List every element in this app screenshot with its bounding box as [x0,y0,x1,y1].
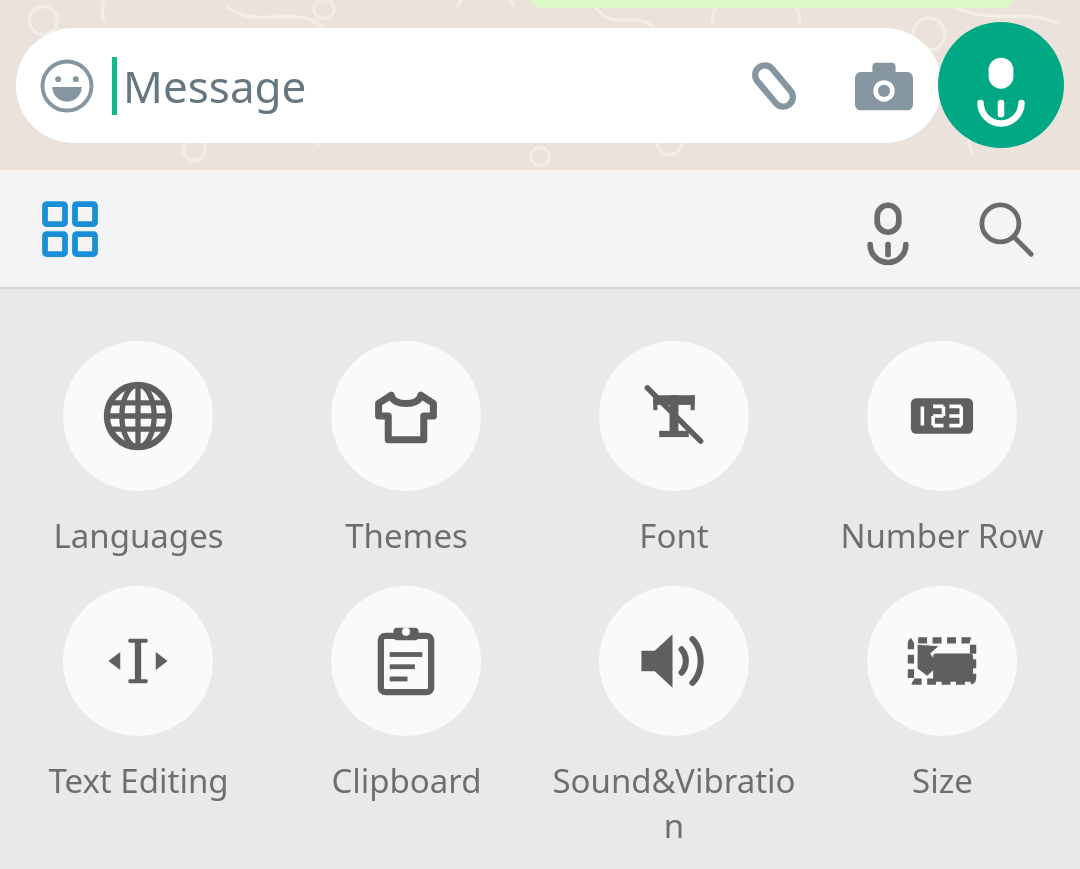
button[interactable]: Attach [738,50,810,122]
button[interactable]: Size [812,586,1072,803]
button[interactable]: Clipboard [276,586,536,803]
button[interactable]: Keyboard menu [26,185,114,273]
button[interactable]: Text Editing [8,586,268,803]
staticText: Size [912,758,973,803]
button[interactable]: Camera [848,50,920,122]
button[interactable]: Sound&Vibration [544,586,804,848]
button[interactable]: Emoji [16,28,942,143]
staticText: Text Editing [48,758,229,803]
staticText: Font [639,513,709,558]
staticText: Number Row [840,513,1044,558]
button[interactable]: Voice message [938,22,1064,148]
button[interactable]: Themes [276,341,536,558]
button[interactable]: Emoji [38,57,96,115]
button[interactable]: Font [544,341,804,558]
button[interactable]: Languages [8,341,268,558]
button[interactable]: Voice input [844,185,932,273]
button[interactable]: Search [962,185,1050,273]
staticText: Sound&Vibration [544,758,804,848]
staticText: Clipboard [331,758,482,803]
button[interactable]: Number Row [812,341,1072,558]
staticText: Message [123,56,307,116]
staticText: Languages [53,513,224,558]
staticText: Themes [345,513,468,558]
